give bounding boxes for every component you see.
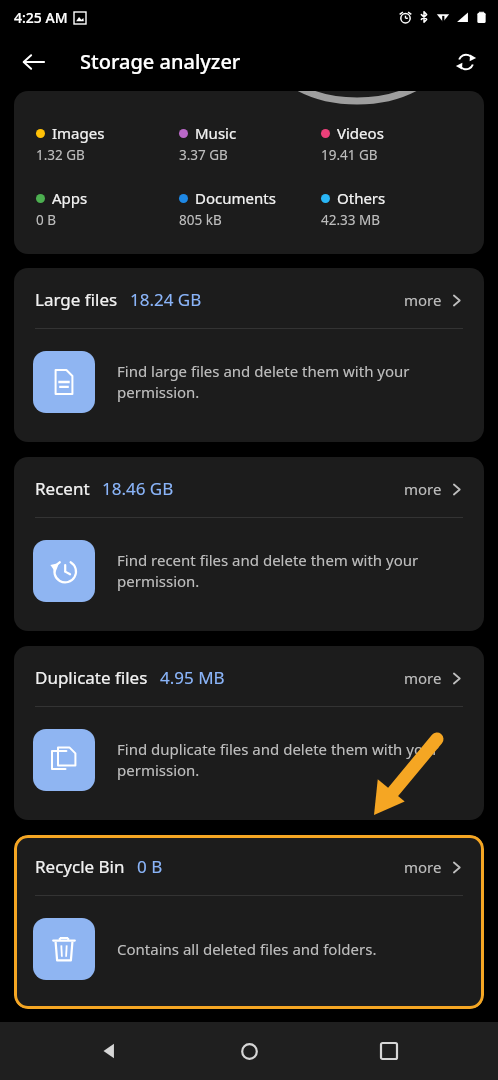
staticText: Others [337,188,386,208]
button[interactable]: Recycle Bin [14,835,484,1009]
staticText: Duplicate files [35,666,148,689]
button[interactable]: Duplicate files [14,646,484,820]
staticText: Storage analyzer [80,48,241,75]
staticText: Recent [35,477,90,500]
staticText: Contains all deleted files and folders. [117,939,377,959]
staticText: Documents [195,188,276,208]
staticText: 3.37 GB [179,146,228,164]
button[interactable]: Back [12,40,56,84]
button[interactable]: Recent [14,457,484,631]
staticText: 4.95 MB [160,666,225,689]
staticText: Images [52,123,105,143]
staticText: Recycle Bin [35,855,125,878]
staticText: Find large files and delete them with yo… [117,361,465,403]
button[interactable]: Back [80,1022,140,1080]
staticText: more [404,290,442,310]
button[interactable]: Home [219,1022,279,1080]
staticText: 805 kB [179,211,222,229]
staticText: 42.33 MB [321,211,381,229]
staticText: more [404,479,442,499]
staticText: Apps [52,188,88,208]
button[interactable]: Recent apps [359,1022,419,1080]
staticText: 18.24 GB [130,288,202,311]
staticText: Large files [35,288,118,311]
staticText: Find recent files and delete them with y… [117,550,465,592]
staticText: Find duplicate files and delete them wit… [117,739,465,781]
staticText: 19.41 GB [321,146,378,164]
staticText: 0 B [137,855,163,878]
staticText: 4:25 AM [14,8,68,27]
staticText: more [404,857,442,877]
staticText: 0 B [36,211,57,229]
button[interactable]: Large files [14,268,484,442]
button[interactable]: Images [14,91,484,254]
staticText: more [404,668,442,688]
button[interactable]: Refresh [444,40,488,84]
staticText: 1.32 GB [36,146,85,164]
staticText: 18.46 GB [102,477,174,500]
staticText: Music [195,123,237,143]
staticText: Videos [337,123,384,143]
